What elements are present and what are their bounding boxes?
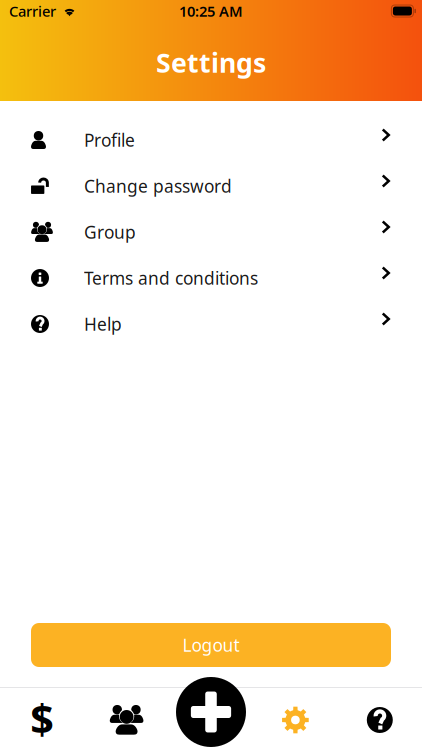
button[interactable]: Add <box>176 677 246 747</box>
staticText: Change password <box>84 174 232 197</box>
button[interactable]: Payments <box>0 689 84 750</box>
staticText: Carrier <box>9 1 56 21</box>
staticText: Terms and conditions <box>84 266 258 289</box>
staticText: Help <box>84 312 122 335</box>
staticText: Profile <box>84 128 135 151</box>
button[interactable]: Help <box>0 301 422 347</box>
button[interactable]: Change password <box>0 163 422 209</box>
staticText: Group <box>84 220 136 243</box>
button[interactable]: Group <box>0 209 422 255</box>
button[interactable]: Groups <box>84 689 169 750</box>
staticText: $ <box>30 691 54 745</box>
staticText: Logout <box>182 633 239 656</box>
button[interactable]: Help <box>338 689 422 750</box>
button[interactable]: Profile <box>0 117 422 163</box>
staticText: Settings <box>156 45 266 80</box>
button[interactable]: Logout <box>31 623 391 667</box>
button[interactable]: Terms and conditions <box>0 255 422 301</box>
button[interactable]: Settings <box>253 689 338 750</box>
staticText: 10:25 AM <box>179 1 243 21</box>
